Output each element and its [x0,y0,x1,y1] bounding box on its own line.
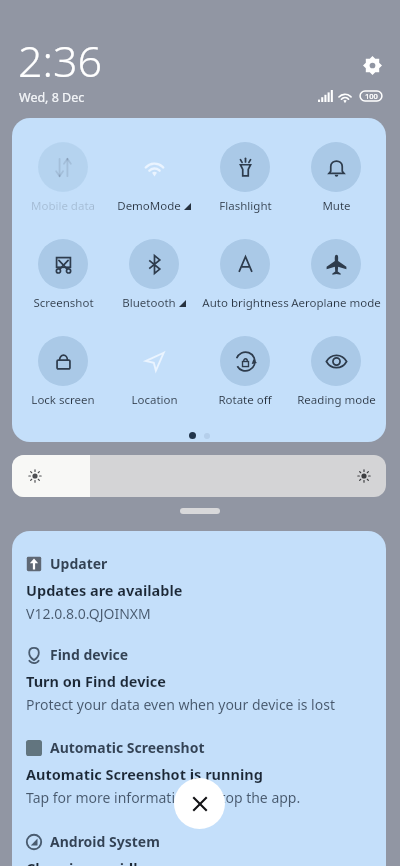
staticText: Auto brightness [202,295,289,311]
staticText: DemoMode [117,198,181,214]
staticText: Automatic Screenshot [50,738,205,757]
staticText: Rotate off [218,392,272,408]
staticText: 2:36 [18,31,103,90]
button[interactable]: Lock screen [18,336,108,418]
button[interactable]: Rotate off [200,336,290,418]
staticText: Mobile data [31,198,95,214]
button[interactable]: Aeroplane mode [291,239,381,321]
button[interactable]: Close [174,778,225,829]
staticText: V12.0.8.0.QJOINXM [26,604,151,623]
button[interactable]: Updater [26,554,376,623]
button[interactable]: Settings [358,51,386,79]
button[interactable]: Reading mode [291,336,381,418]
staticText: Flashlight [219,198,272,214]
button[interactable]: Screenshot [18,239,108,321]
button[interactable]: Flashlight [200,142,290,224]
staticText: Automatic Screenshot is running [26,764,263,784]
button[interactable]: Brightness [12,455,386,497]
staticText: Updates are available [26,580,183,600]
staticText: Reading mode [297,392,376,408]
staticText: Charging rapidly [26,858,146,866]
staticText: Aeroplane mode [291,295,381,311]
staticText: 100 [365,91,378,101]
staticText: Android System [50,832,160,851]
staticText: Protect your data even when your device … [26,695,335,714]
staticText: Updater [50,554,108,573]
button[interactable]: Mobile data [18,142,108,224]
staticText: Location [131,392,178,408]
staticText: Bluetooth [122,295,176,311]
button[interactable]: Find device [26,645,376,714]
staticText: Find device [50,645,129,664]
button[interactable]: Location [109,336,199,418]
staticText: Turn on Find device [26,671,166,691]
staticText: Screenshot [33,295,94,311]
button[interactable]: Automatic Screenshot [26,738,376,807]
staticText: Mute [322,198,351,214]
staticText: Wed, 8 Dec [19,89,85,106]
button[interactable]: DemoMode [109,142,199,224]
button[interactable]: Mute [291,142,381,224]
button[interactable]: Android System [26,832,376,866]
staticText: Lock screen [31,392,95,408]
button[interactable]: Auto brightness [200,239,290,321]
button[interactable]: Bluetooth [109,239,199,321]
staticText: Tap for more information or stop the app… [26,788,301,807]
